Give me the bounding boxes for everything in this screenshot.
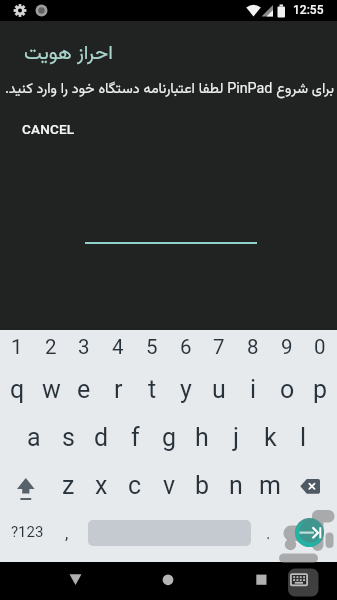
staticText: z [62,471,75,500]
button[interactable]: e [67,366,101,412]
button[interactable]: u [202,366,236,412]
staticText: p [313,375,328,404]
staticText: 8 [247,335,259,359]
staticText: f [131,423,140,452]
button[interactable]: n [219,462,253,508]
staticText: x [95,471,108,500]
staticText: 0 [314,335,326,359]
staticText: g [162,423,177,452]
staticText: احراز هویت [24,38,113,69]
staticText: b [195,471,210,500]
staticText: k [264,423,277,452]
button[interactable]: i [236,366,270,412]
staticText: 1 [11,335,23,359]
button[interactable] [4,462,46,508]
button[interactable]: t [135,366,169,412]
button[interactable]: v [152,462,186,508]
button[interactable]: b [185,462,219,508]
staticText: q [10,375,25,404]
staticText: w [42,375,61,404]
button[interactable]: 3 [67,332,101,361]
staticText: e [77,375,91,404]
button[interactable]: 1 [0,332,34,361]
staticText: d [94,423,109,452]
staticText: r [114,375,123,404]
button[interactable] [50,565,102,597]
staticText: CANCEL [22,121,75,137]
button[interactable]: . [253,510,283,556]
staticText: m [259,471,281,500]
button[interactable]: 9 [270,332,304,361]
button[interactable]: r [101,366,135,412]
button[interactable]: 2 [34,332,68,361]
button[interactable]: f [118,414,152,460]
button[interactable]: x [84,462,118,508]
button[interactable]: d [84,414,118,460]
button[interactable]: w [34,366,68,412]
staticText: s [62,423,75,452]
button[interactable]: 5 [135,332,169,361]
staticText: y [180,375,192,404]
staticText: j [233,423,239,452]
staticText: 7 [213,335,225,359]
staticText: n [229,471,243,500]
button[interactable]: ?123 [2,509,52,555]
button[interactable]: m [253,462,287,508]
staticText: 2 [45,335,57,359]
staticText: ?123 [11,523,44,541]
button[interactable]: 4 [101,332,135,361]
button[interactable]: p [303,366,337,412]
staticText: . [266,523,271,543]
button[interactable]: a [17,414,51,460]
staticText: 3 [78,335,90,359]
staticText: u [212,375,226,404]
staticText: v [163,471,176,500]
button[interactable] [142,565,194,597]
staticText: 5 [146,335,158,359]
button[interactable]: 8 [236,332,270,361]
button[interactable]: q [0,366,34,412]
button[interactable]: 7 [202,332,236,361]
staticText: c [128,471,142,500]
staticText: i [250,375,257,404]
button[interactable] [295,518,324,547]
staticText: 9 [281,335,293,359]
button[interactable]: 0 [303,332,337,361]
button[interactable]: s [51,414,85,460]
button[interactable]: j [219,414,253,460]
staticText: 4 [112,335,124,359]
staticText: o [280,375,295,404]
staticText: a [27,423,41,452]
button[interactable]: CANCEL [12,114,84,144]
staticText: , [65,523,69,543]
staticText: h [195,423,209,452]
staticText: l [300,423,307,452]
button[interactable]: k [253,414,287,460]
staticText: 6 [180,335,192,359]
button[interactable]: l [286,414,320,460]
button[interactable] [235,565,287,597]
staticText: t [148,375,157,404]
staticText: برای شروع PinPad لطفا اعتبارنامه دستگاه … [3,78,334,100]
button[interactable]: g [152,414,186,460]
button[interactable] [290,462,334,508]
staticText: 12:55 [293,3,324,17]
button[interactable]: z [51,462,85,508]
button[interactable]: , [52,510,82,556]
button[interactable]: y [169,366,203,412]
button[interactable]: h [185,414,219,460]
button[interactable]: o [270,366,304,412]
button[interactable]: 6 [169,332,203,361]
button[interactable]: c [118,462,152,508]
